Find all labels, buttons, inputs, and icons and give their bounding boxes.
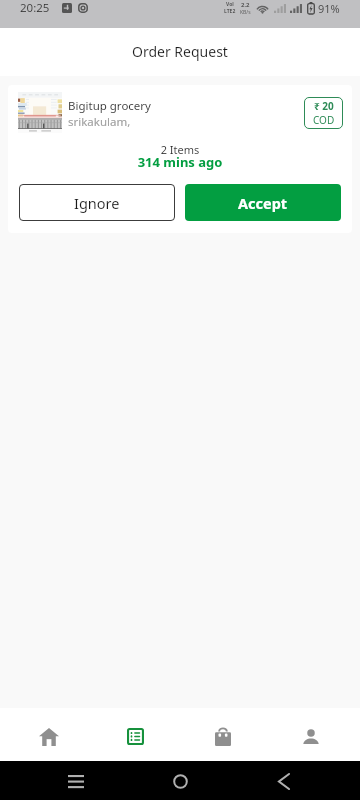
staticText: 91% bbox=[318, 1, 340, 16]
staticText: 20:25 bbox=[20, 0, 50, 16]
button[interactable]: Home bbox=[128, 762, 232, 800]
staticText: KB/s bbox=[240, 9, 251, 16]
staticText: Ignore bbox=[74, 193, 120, 213]
staticText: COD bbox=[313, 113, 335, 127]
staticText: 2 Items bbox=[8, 142, 352, 157]
button[interactable]: Back bbox=[232, 762, 336, 800]
button[interactable]: Orders bbox=[92, 712, 179, 761]
button[interactable]: Accept bbox=[185, 184, 341, 221]
staticText: ₹ 20 bbox=[314, 99, 334, 113]
staticText: srikakulam, bbox=[68, 114, 131, 130]
staticText: Order Request bbox=[132, 42, 228, 61]
staticText: Bigitup grocery bbox=[68, 98, 151, 114]
staticText: 314 mins ago bbox=[8, 153, 352, 171]
button[interactable]: Profile bbox=[267, 712, 355, 761]
button[interactable]: Shop bbox=[179, 712, 267, 761]
staticText: Vol bbox=[226, 1, 234, 8]
button[interactable]: Home bbox=[5, 712, 92, 761]
staticText: 2.2 bbox=[241, 1, 250, 9]
staticText: LTE2 bbox=[224, 8, 236, 15]
button[interactable]: Recent apps bbox=[24, 762, 128, 800]
staticText: Accept bbox=[238, 193, 288, 213]
button[interactable]: Ignore bbox=[19, 184, 175, 221]
